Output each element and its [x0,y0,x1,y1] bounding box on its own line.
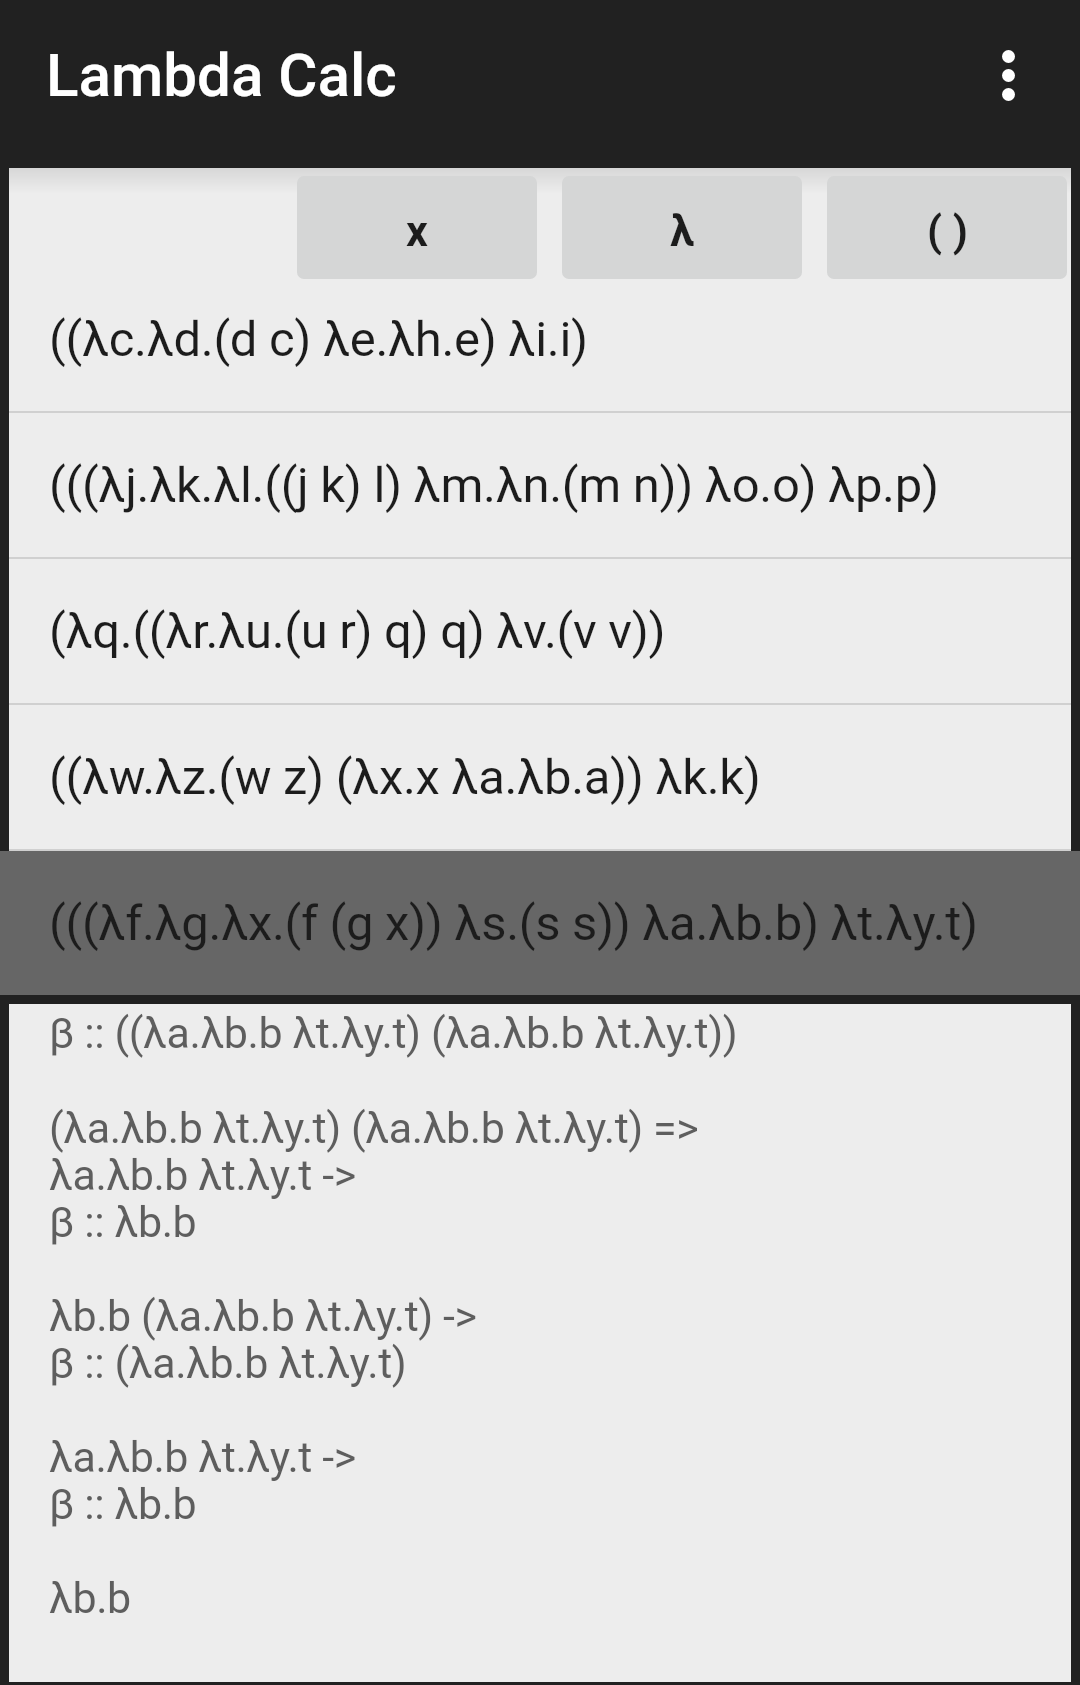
button[interactable]: ( ) [827,176,1067,279]
staticText: (((λf.λg.λx.(f (g x)) λs.(s s)) λa.λb.b)… [49,895,978,952]
staticText: ((λw.λz.(w z) (λx.x λa.λb.a)) λk.k) [49,749,761,806]
button[interactable]: (((λf.λg.λx.(f (g x)) λs.(s s)) λa.λb.b)… [9,851,1071,995]
staticText: β :: ((λa.λb.b λt.λy.t) (λa.λb.b λt.λy.t… [49,1008,1061,1682]
staticText: ( ) [927,206,968,256]
button[interactable]: x [297,176,537,279]
staticText: Lambda Calc [46,40,397,110]
staticText: (λq.((λr.λu.(u r) q) q) λv.(v v)) [49,603,666,660]
button[interactable]: ((λc.λd.(d c) λe.λh.e) λi.i) [9,267,1071,411]
button[interactable]: (λq.((λr.λu.(u r) q) q) λv.(v v)) [9,559,1071,703]
button[interactable]: λ [562,176,802,279]
staticText: ((λc.λd.(d c) λe.λh.e) λi.i) [49,311,588,368]
staticText: λ [670,206,694,256]
button[interactable]: ((λw.λz.(w z) (λx.x λa.λb.a)) λk.k) [9,705,1071,849]
button[interactable]: (((λj.λk.λl.((j k) l) λm.λn.(m n)) λo.o)… [9,413,1071,557]
staticText: (((λj.λk.λl.((j k) l) λm.λn.(m n)) λo.o)… [49,457,939,514]
staticText: x [406,206,428,256]
button[interactable]: More options [953,20,1063,130]
